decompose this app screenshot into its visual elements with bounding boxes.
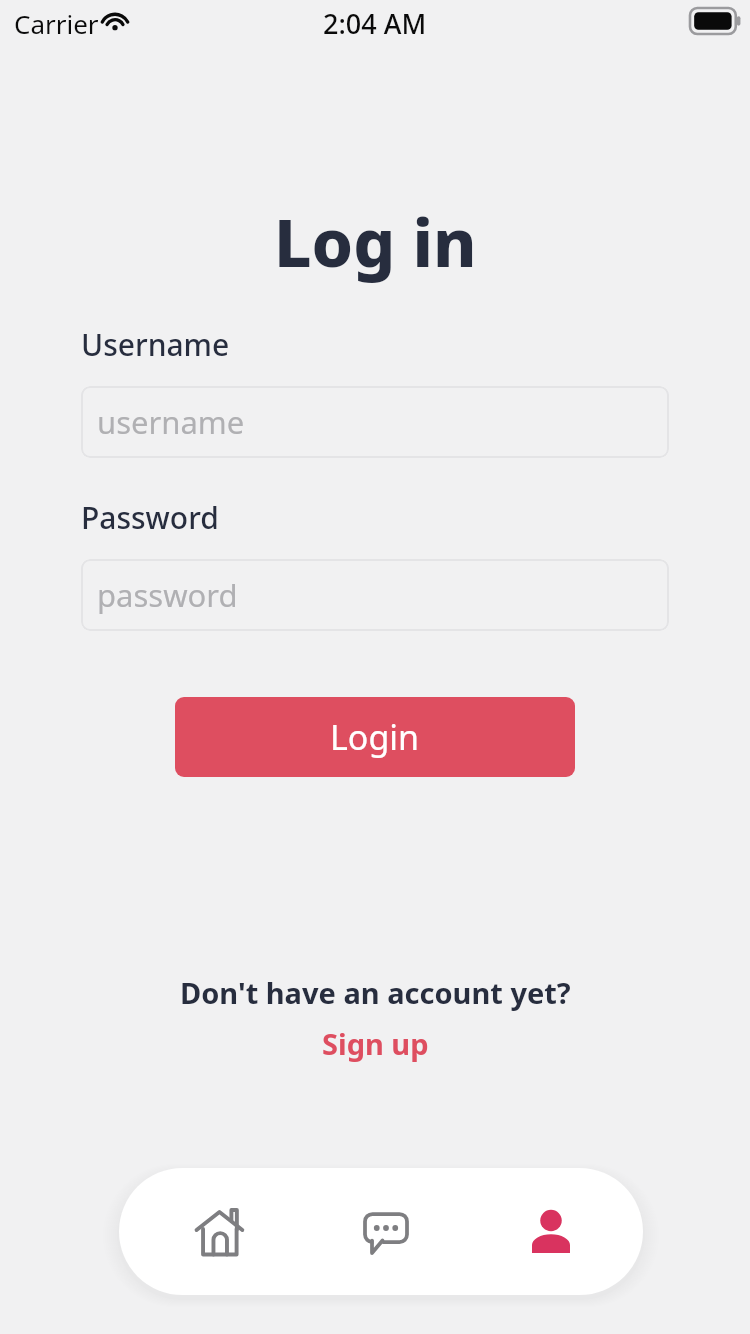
button[interactable]: Sign up [316, 1022, 435, 1065]
staticText: Login [330, 714, 420, 760]
staticText: username [97, 401, 245, 443]
button[interactable]: password [81, 559, 669, 631]
button[interactable]: Login [175, 697, 575, 777]
staticText: Carrier [14, 6, 99, 41]
staticText: Log in [274, 196, 477, 286]
other: Wi-Fi [100, 9, 130, 33]
other: Battery [690, 8, 742, 34]
staticText: password [97, 574, 238, 616]
staticText: Username [81, 324, 230, 365]
button[interactable]: Messages [338, 1168, 434, 1295]
staticText: Sign up [322, 1024, 429, 1063]
staticText: 2:04 AM [323, 5, 427, 42]
button[interactable]: username [81, 386, 669, 458]
staticText: Password [81, 497, 219, 538]
button[interactable]: Profile [503, 1168, 599, 1295]
staticText: Don't have an account yet? [180, 973, 571, 1012]
button[interactable]: Home [173, 1168, 269, 1295]
